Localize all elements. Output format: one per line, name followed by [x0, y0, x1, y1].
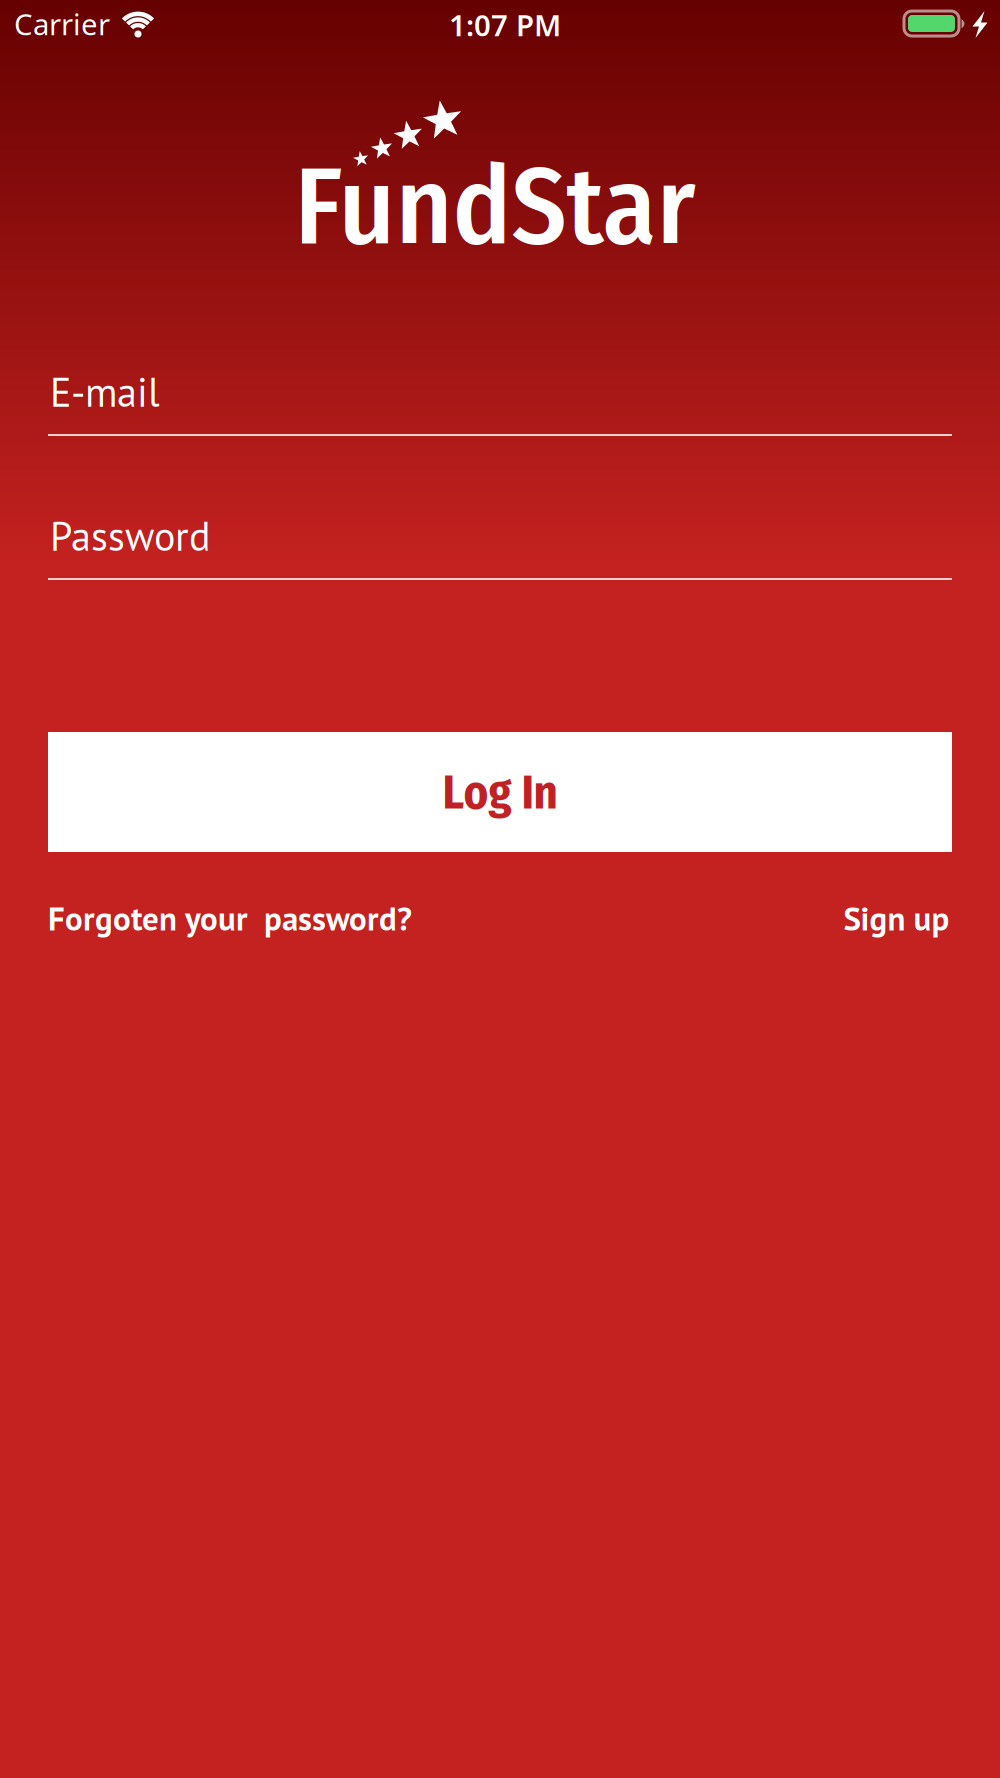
staticText: 1:07 PM: [449, 5, 561, 44]
button[interactable]: Forgoten your password?: [48, 897, 412, 939]
button[interactable]: Log In: [48, 732, 952, 852]
button[interactable]: E-mail: [48, 370, 952, 436]
staticText: Log In: [442, 765, 557, 821]
button[interactable]: Sign up: [843, 897, 949, 939]
staticText: E-mail: [50, 366, 160, 418]
staticText: Sign up: [843, 897, 949, 939]
staticText: Password: [50, 510, 211, 562]
button[interactable]: Password: [48, 514, 952, 580]
staticText: Carrier: [14, 4, 110, 43]
staticText: Forgoten your password?: [48, 897, 412, 939]
staticText: FundStar: [294, 141, 695, 272]
